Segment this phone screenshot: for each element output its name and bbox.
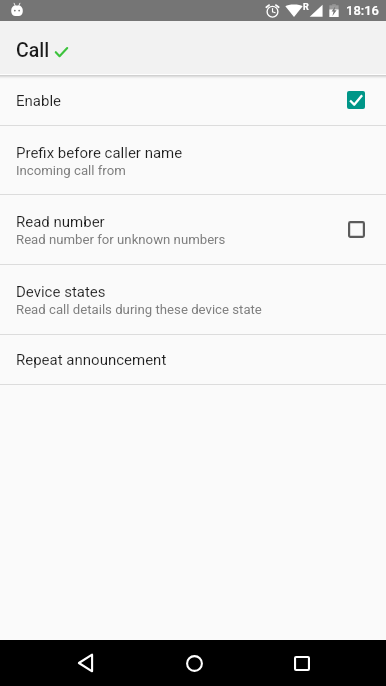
staticText: Read number [16,213,105,231]
button[interactable]: Prefix before caller name [0,126,386,194]
staticText: Read call details during these device st… [16,302,262,317]
button[interactable]: Enable [0,79,386,125]
staticText: Read number for unknown numbers [16,232,226,247]
staticText: Incoming call from [16,163,126,178]
button[interactable]: Repeat announcement [0,335,386,384]
staticText: 18:16 [346,3,379,18]
staticText: Prefix before caller name [16,144,183,162]
button[interactable]: Recents [280,641,324,685]
button[interactable]: Read number [0,195,386,264]
staticText: Enable [16,92,61,110]
button[interactable]: Home [172,641,216,685]
staticText: Call [16,39,50,62]
button[interactable]: Back [63,641,107,685]
staticText: Repeat announcement [16,351,167,369]
button[interactable]: Toggle [344,88,368,112]
button[interactable]: Device states [0,265,386,334]
staticText: R [303,2,309,13]
staticText: Device states [16,283,106,301]
button[interactable]: Toggle [344,217,368,241]
